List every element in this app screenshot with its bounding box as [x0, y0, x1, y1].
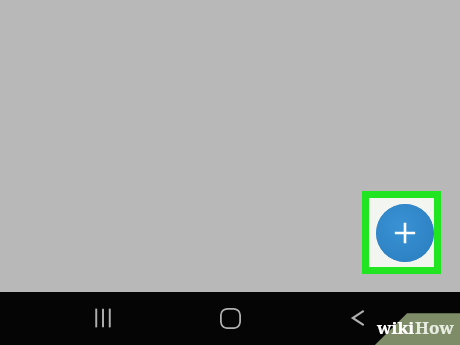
staticText: How [415, 316, 454, 339]
button[interactable]: Add [376, 204, 434, 262]
button[interactable]: Home [206, 294, 254, 342]
button[interactable]: Recent apps [79, 294, 127, 342]
staticText: wiki [377, 316, 415, 339]
button[interactable]: Back [334, 294, 382, 342]
